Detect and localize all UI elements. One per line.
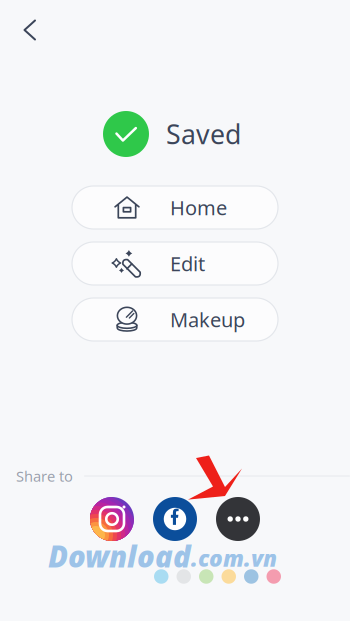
button[interactable]: Share to Instagram (90, 497, 134, 541)
staticText: Share to (16, 466, 73, 486)
staticText: Saved (166, 116, 241, 152)
button[interactable]: Share to Facebook (153, 497, 197, 541)
staticText: Download (48, 536, 191, 575)
button[interactable]: More sharing options (216, 497, 260, 541)
button[interactable]: Edit (72, 242, 278, 285)
button[interactable]: Makeup (72, 298, 278, 341)
staticText: .com.vn (191, 543, 277, 573)
staticText: Edit (170, 250, 205, 277)
button[interactable]: Home (72, 186, 278, 229)
button[interactable]: Back (10, 10, 50, 50)
staticText: Makeup (170, 306, 245, 333)
staticText: Home (170, 194, 227, 221)
